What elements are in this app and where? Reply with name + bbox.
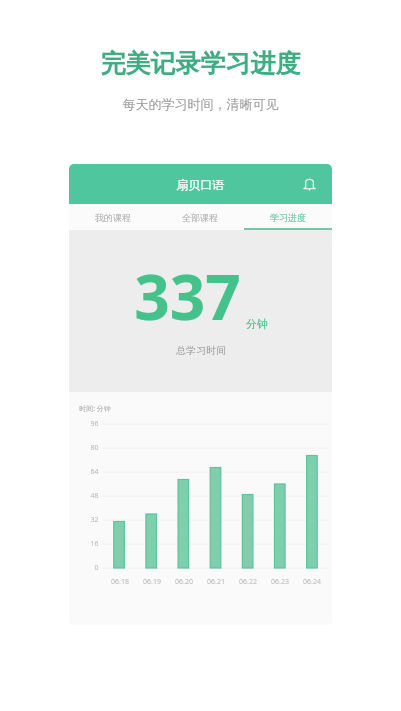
staticText: 总学习时间 — [176, 344, 226, 357]
button[interactable]: 我的课程 — [69, 204, 156, 230]
staticText: 32 — [90, 515, 99, 525]
button[interactable]: Notifications — [296, 171, 322, 197]
staticText: 全部课程 — [182, 212, 218, 223]
staticText: 06.22 — [239, 577, 257, 587]
button[interactable]: 学习进度 — [244, 204, 332, 230]
staticText: 06.19 — [143, 577, 161, 587]
staticText: 我的课程 — [95, 212, 131, 223]
staticText: 06.21 — [207, 577, 225, 587]
staticText: 06.23 — [271, 577, 289, 587]
staticText: 337 — [134, 254, 241, 338]
staticText: 80 — [90, 443, 99, 453]
staticText: 时间: 分钟 — [79, 404, 111, 414]
staticText: 每天的学习时间，清晰可见 — [0, 96, 401, 112]
staticText: 分钟 — [246, 317, 268, 331]
staticText: 扇贝口语 — [69, 177, 332, 192]
staticText: 16 — [90, 539, 99, 549]
staticText: 学习进度 — [270, 212, 306, 223]
staticText: 06.24 — [303, 577, 321, 587]
staticText: 06.18 — [111, 577, 129, 587]
staticText: 06.20 — [175, 577, 193, 587]
staticText: 64 — [90, 467, 99, 477]
staticText: 完美记录学习进度 — [0, 48, 401, 79]
staticText: 96 — [90, 419, 99, 429]
staticText: 0 — [94, 563, 99, 573]
staticText: 48 — [90, 491, 99, 501]
button[interactable]: 全部课程 — [156, 204, 244, 230]
